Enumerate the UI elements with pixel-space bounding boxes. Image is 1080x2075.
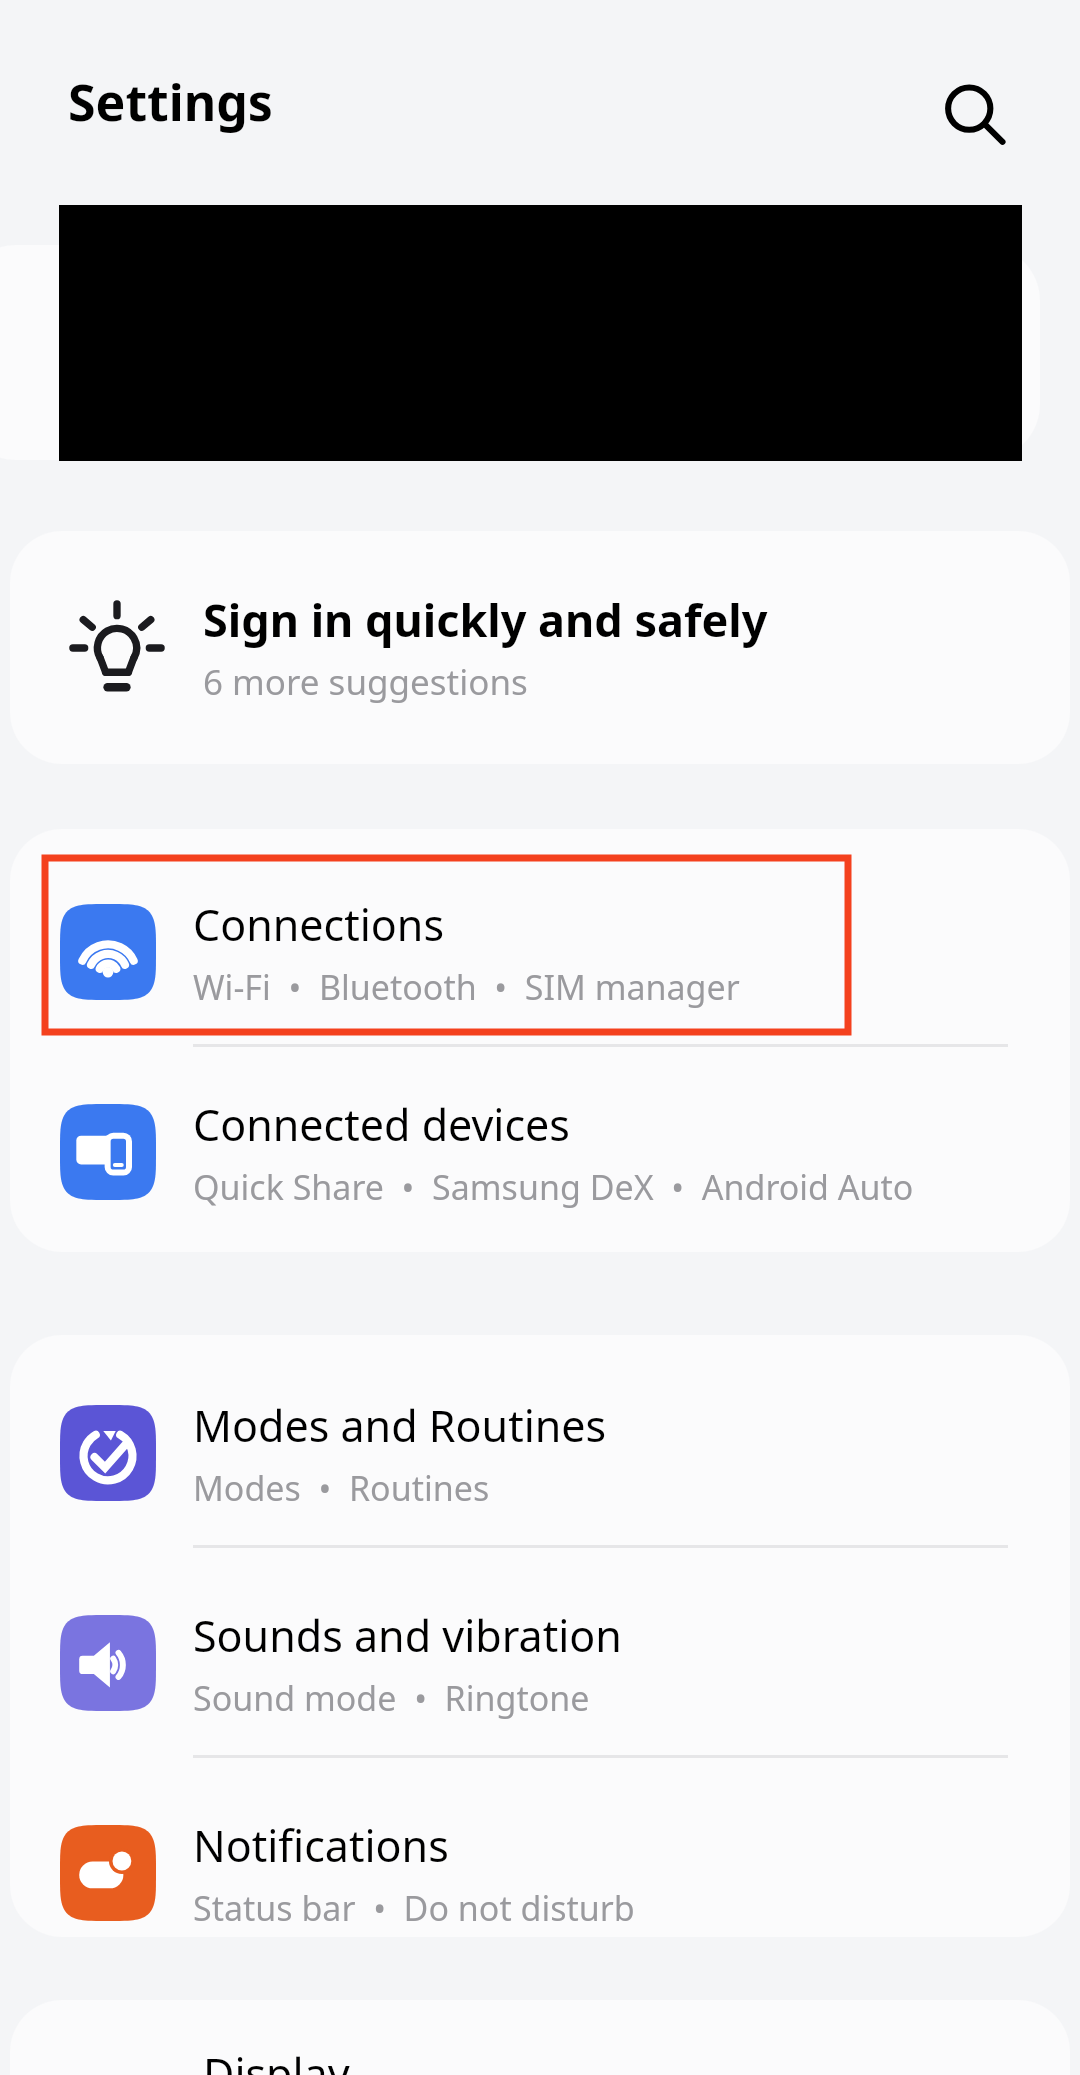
staticText: Display: [203, 2044, 350, 2075]
staticText: Sign in quickly and safely: [203, 589, 768, 650]
staticText: Settings: [68, 68, 273, 136]
staticText: Modes • Routines: [193, 1465, 490, 1511]
button[interactable]: Modes and Routines: [10, 1361, 1070, 1545]
staticText: Status bar • Do not disturb: [193, 1885, 635, 1931]
staticText: 6 more suggestions: [203, 658, 528, 706]
staticText: Connections: [193, 895, 445, 954]
button[interactable]: [0, 245, 1040, 460]
button[interactable]: Notifications: [10, 1781, 1070, 1937]
staticText: Sound mode • Ringtone: [193, 1675, 590, 1721]
button[interactable]: Search: [920, 60, 1030, 170]
staticText: Modes and Routines: [193, 1396, 607, 1455]
button[interactable]: Sign in quickly and safely: [10, 531, 1070, 764]
staticText: Sounds and vibration: [193, 1606, 622, 1665]
button[interactable]: Sounds and vibration: [10, 1571, 1070, 1755]
staticText: Connected devices: [193, 1095, 570, 1154]
staticText: Wi-Fi • Bluetooth • SIM manager: [193, 964, 740, 1010]
button[interactable]: Connections: [10, 860, 1070, 1044]
staticText: Quick Share • Samsung DeX • Android Auto: [193, 1164, 914, 1210]
button[interactable]: Connected devices: [10, 1060, 1070, 1244]
staticText: Notifications: [193, 1816, 449, 1875]
